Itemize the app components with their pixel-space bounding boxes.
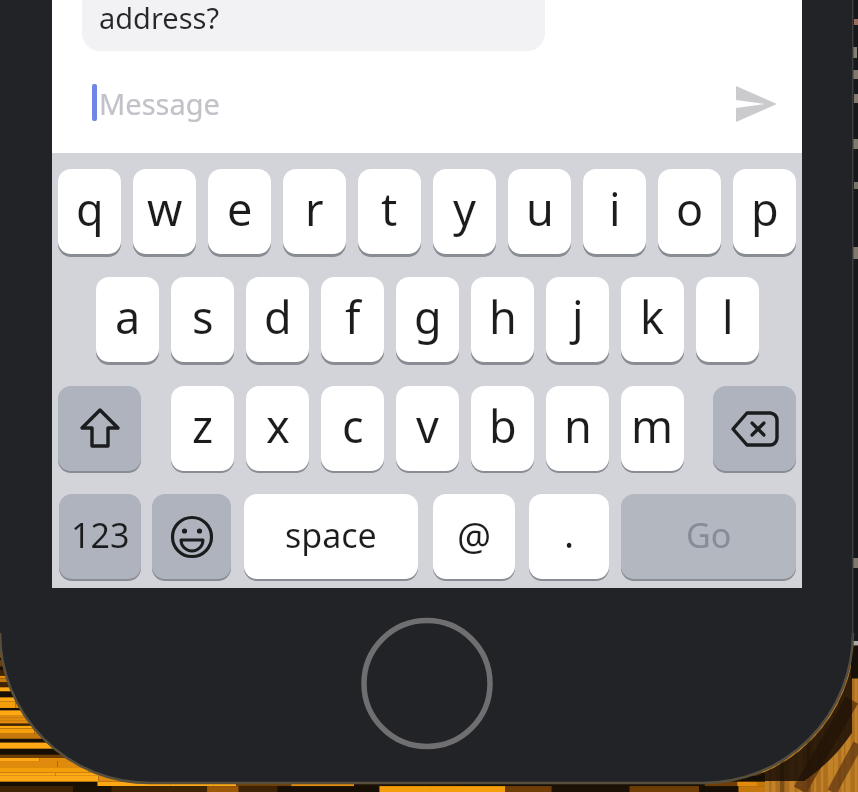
staticText: n [564, 395, 592, 456]
button[interactable]: x [246, 386, 309, 471]
button[interactable]: v [396, 386, 459, 471]
button[interactable] [152, 494, 231, 579]
button[interactable]: r [283, 169, 346, 254]
staticText: q [76, 178, 104, 239]
button[interactable]: Message [99, 84, 739, 124]
button[interactable]: m [621, 386, 684, 471]
button[interactable]: 123 [59, 494, 141, 579]
staticText: p [751, 178, 779, 239]
staticText: y [453, 178, 476, 239]
button[interactable]: q [58, 169, 121, 254]
staticText: m [631, 395, 674, 456]
staticText: space [285, 512, 377, 558]
button[interactable]: j [546, 277, 609, 362]
button[interactable]: w [133, 169, 196, 254]
staticText: b [489, 395, 517, 456]
button[interactable]: space [244, 494, 418, 579]
staticText: x [266, 395, 290, 456]
button[interactable]: n [546, 386, 609, 471]
staticText: k [640, 286, 665, 347]
staticText: Message [99, 84, 220, 123]
staticText: r [305, 178, 324, 239]
staticText: address? [99, 0, 220, 37]
staticText: c [342, 395, 364, 456]
button[interactable] [713, 386, 796, 471]
staticText: a [115, 286, 141, 347]
staticText: f [345, 286, 361, 347]
button[interactable]: p [733, 169, 796, 254]
staticText: d [264, 286, 292, 347]
staticText: . [564, 507, 575, 559]
staticText: u [526, 178, 554, 239]
staticText: e [227, 178, 253, 239]
button[interactable]: g [396, 277, 459, 362]
button[interactable]: d [246, 277, 309, 362]
button[interactable]: a [96, 277, 159, 362]
staticText: i [609, 178, 621, 239]
button[interactable]: l [696, 277, 759, 362]
staticText: @ [457, 509, 492, 561]
button[interactable]: f [321, 277, 384, 362]
button[interactable]: h [471, 277, 534, 362]
button[interactable]: i [583, 169, 646, 254]
button[interactable] [730, 80, 784, 128]
staticText: l [722, 286, 734, 347]
staticText: j [572, 286, 584, 347]
button[interactable] [58, 386, 141, 471]
staticText: w [147, 178, 183, 239]
staticText: o [676, 178, 704, 239]
button[interactable]: t [358, 169, 421, 254]
staticText: h [489, 286, 517, 347]
staticText: z [192, 395, 214, 456]
staticText: t [381, 178, 398, 239]
staticText: s [192, 286, 214, 347]
staticText: 123 [71, 512, 130, 558]
button[interactable]: z [171, 386, 234, 471]
button[interactable]: @ [433, 494, 515, 579]
button[interactable]: s [171, 277, 234, 362]
button[interactable]: k [621, 277, 684, 362]
button[interactable]: e [208, 169, 271, 254]
button[interactable]: . [529, 494, 609, 579]
button[interactable]: o [658, 169, 721, 254]
staticText: v [416, 395, 439, 456]
staticText: Go [686, 512, 732, 558]
button[interactable]: c [321, 386, 384, 471]
button[interactable]: b [471, 386, 534, 471]
button[interactable]: Go [621, 494, 796, 579]
button[interactable]: u [508, 169, 571, 254]
button[interactable]: y [433, 169, 496, 254]
staticText: g [414, 286, 442, 347]
